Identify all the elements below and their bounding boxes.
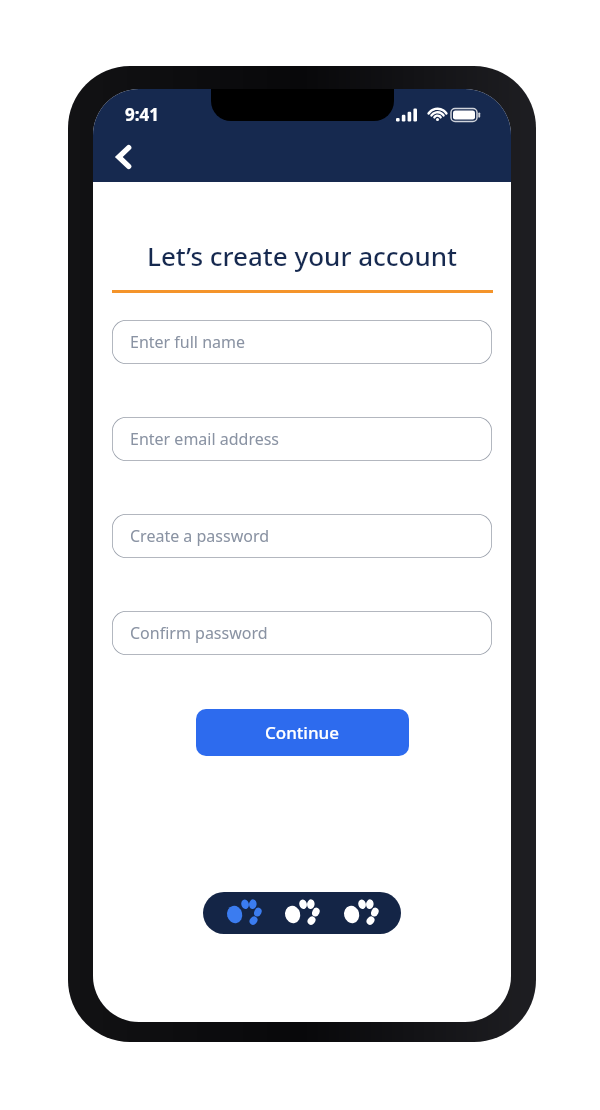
staticText: Enter email address	[130, 428, 280, 450]
button[interactable]: Enter full name	[112, 320, 492, 364]
staticText: Continue	[265, 721, 340, 744]
button[interactable]: Back	[98, 131, 150, 183]
staticText: Let’s create your account	[101, 238, 503, 273]
button[interactable]: Enter email address	[112, 417, 492, 461]
button[interactable]: Page indicator	[203, 892, 401, 934]
staticText: Enter full name	[130, 331, 246, 353]
staticText: 9:41	[125, 103, 159, 126]
button[interactable]: Confirm password	[112, 611, 492, 655]
button[interactable]: Create a password	[112, 514, 492, 558]
staticText: Confirm password	[130, 622, 268, 644]
button[interactable]: Continue	[196, 709, 409, 756]
staticText: Create a password	[130, 525, 270, 547]
